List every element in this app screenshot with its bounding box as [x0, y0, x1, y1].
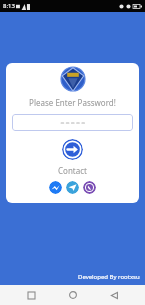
button[interactable] — [12, 114, 133, 131]
button[interactable]: Recents — [20, 285, 42, 305]
other: App logo — [61, 67, 85, 91]
button[interactable]: Back — [103, 285, 125, 305]
button[interactable]: Telegram — [66, 181, 79, 194]
button[interactable]: Messenger — [49, 181, 62, 194]
staticText: 8:13 — [3, 2, 15, 10]
staticText: Please Enter Password! — [29, 97, 116, 108]
button[interactable]: Home — [62, 285, 84, 305]
button[interactable]: Viber — [83, 181, 96, 194]
button[interactable]: Submit password — [62, 139, 83, 160]
staticText: Contact — [58, 165, 87, 176]
staticText: Developed By rootxsu — [78, 273, 140, 281]
